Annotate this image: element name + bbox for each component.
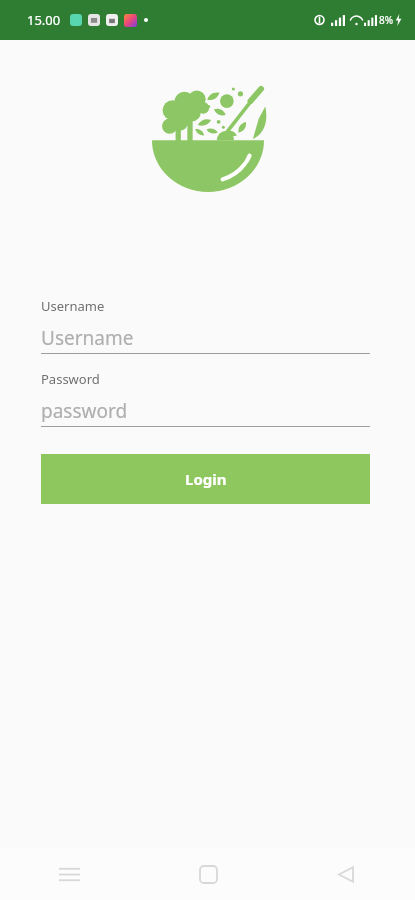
staticText: Password — [41, 370, 100, 388]
staticText: 8% — [379, 13, 394, 27]
button[interactable]: password — [41, 398, 370, 427]
staticText: 15.00 — [27, 11, 61, 29]
button[interactable]: Home — [139, 848, 277, 900]
staticText: Username — [41, 325, 134, 349]
button[interactable]: Username — [41, 325, 370, 354]
button[interactable]: Recent apps — [0, 848, 139, 900]
staticText: Login — [185, 469, 227, 489]
button[interactable]: Back — [277, 848, 415, 900]
staticText: password — [41, 398, 128, 422]
button[interactable]: Login — [41, 454, 370, 504]
staticText: Username — [41, 297, 105, 315]
